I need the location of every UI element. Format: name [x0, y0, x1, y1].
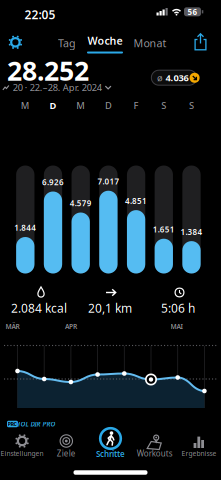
staticText: ø [157, 71, 163, 84]
button[interactable]: ø [151, 68, 203, 87]
staticText: 1.651 [153, 224, 175, 235]
staticText: M [21, 99, 30, 112]
button[interactable]: Workouts [130, 431, 180, 461]
staticText: Einstellungen [1, 449, 44, 458]
staticText: Ziele [57, 448, 76, 459]
button[interactable]: Einstellungen [0, 431, 50, 461]
button[interactable]: Ziele [44, 431, 88, 461]
button[interactable]: 20 · 22.–28. Apr. 2024 [2, 81, 112, 94]
staticText: 22:05 [24, 6, 55, 22]
staticText: APR [65, 322, 77, 331]
staticText: 1.384 [180, 226, 202, 237]
staticText: 28.252 [7, 53, 89, 88]
button[interactable]: Tag [52, 33, 82, 53]
staticText: M [76, 99, 85, 112]
staticText: Monat [133, 36, 166, 50]
staticText: Schritte [96, 449, 125, 459]
staticText: 20,1 km [88, 300, 132, 316]
button[interactable]: Teilen [192, 33, 208, 51]
staticText: HOL DIR PRO [15, 420, 55, 428]
staticText: Workouts [137, 448, 173, 459]
staticText: 1.844 [14, 222, 36, 233]
button[interactable]: Schritte [88, 427, 132, 461]
staticText: 2.084 kcal [11, 300, 67, 316]
staticText: 20 · 22.–28. Apr. 2024 [13, 81, 102, 94]
button[interactable]: PRO [7, 420, 57, 429]
staticText: D [105, 99, 112, 112]
staticText: MAI [170, 322, 182, 331]
staticText: MÄR [5, 322, 19, 331]
staticText: Woche [87, 33, 122, 48]
staticText: 4.851 [125, 195, 147, 206]
button[interactable]: Monat [132, 33, 168, 53]
staticText: PRO [7, 420, 17, 428]
button[interactable]: Ergebnisse [173, 431, 221, 461]
button[interactable]: Woche [86, 32, 124, 54]
staticText: 4.579 [70, 198, 92, 208]
staticText: S [189, 99, 194, 112]
staticText: D [49, 99, 56, 112]
staticText: Tag [58, 36, 76, 50]
staticText: 6.926 [42, 177, 64, 187]
staticText: 7.017 [97, 176, 119, 187]
button[interactable]: Einstellungen [8, 35, 23, 50]
staticText: S [161, 99, 166, 112]
staticText: 5:06 h [161, 300, 195, 316]
staticText: Ergebnisse [181, 449, 216, 458]
staticText: 56 [187, 6, 197, 17]
staticText: 4.036 [165, 71, 188, 84]
staticText: F [134, 99, 139, 112]
